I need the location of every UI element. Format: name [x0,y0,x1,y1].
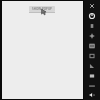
button[interactable]: Back [85,71,99,80]
button[interactable]: Volume up [85,21,99,30]
button[interactable]: Rotate [85,31,99,40]
button[interactable]: Zoom [85,41,99,50]
button[interactable]: Overview [85,81,99,90]
button[interactable]: SHOW POPUP [32,7,52,11]
button[interactable]: More [85,91,99,99]
staticText: SHOW POPUP [32,7,52,11]
button[interactable]: Power [85,11,99,20]
button[interactable]: Cast [85,61,99,70]
button[interactable]: Close [85,1,99,10]
button[interactable]: Screenshot [85,51,99,60]
